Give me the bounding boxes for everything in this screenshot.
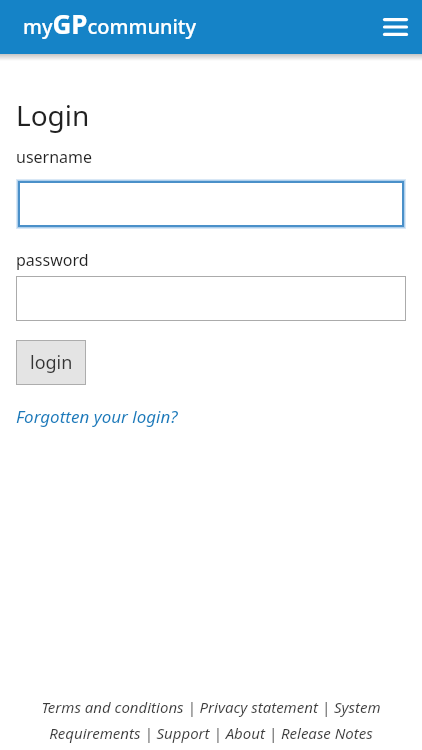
button[interactable]: Terms and conditions | Privacy statement… — [16, 697, 406, 744]
button[interactable] — [16, 276, 406, 321]
staticText: myGPcommunity — [23, 6, 197, 41]
staticText: username — [16, 146, 93, 168]
button[interactable] — [18, 181, 404, 227]
staticText: login — [30, 350, 73, 375]
button[interactable]: Forgotten your login? — [16, 405, 178, 428]
staticText: Login — [16, 96, 90, 134]
staticText: password — [16, 249, 89, 271]
button[interactable]: login — [16, 340, 86, 385]
button[interactable] — [376, 8, 414, 46]
